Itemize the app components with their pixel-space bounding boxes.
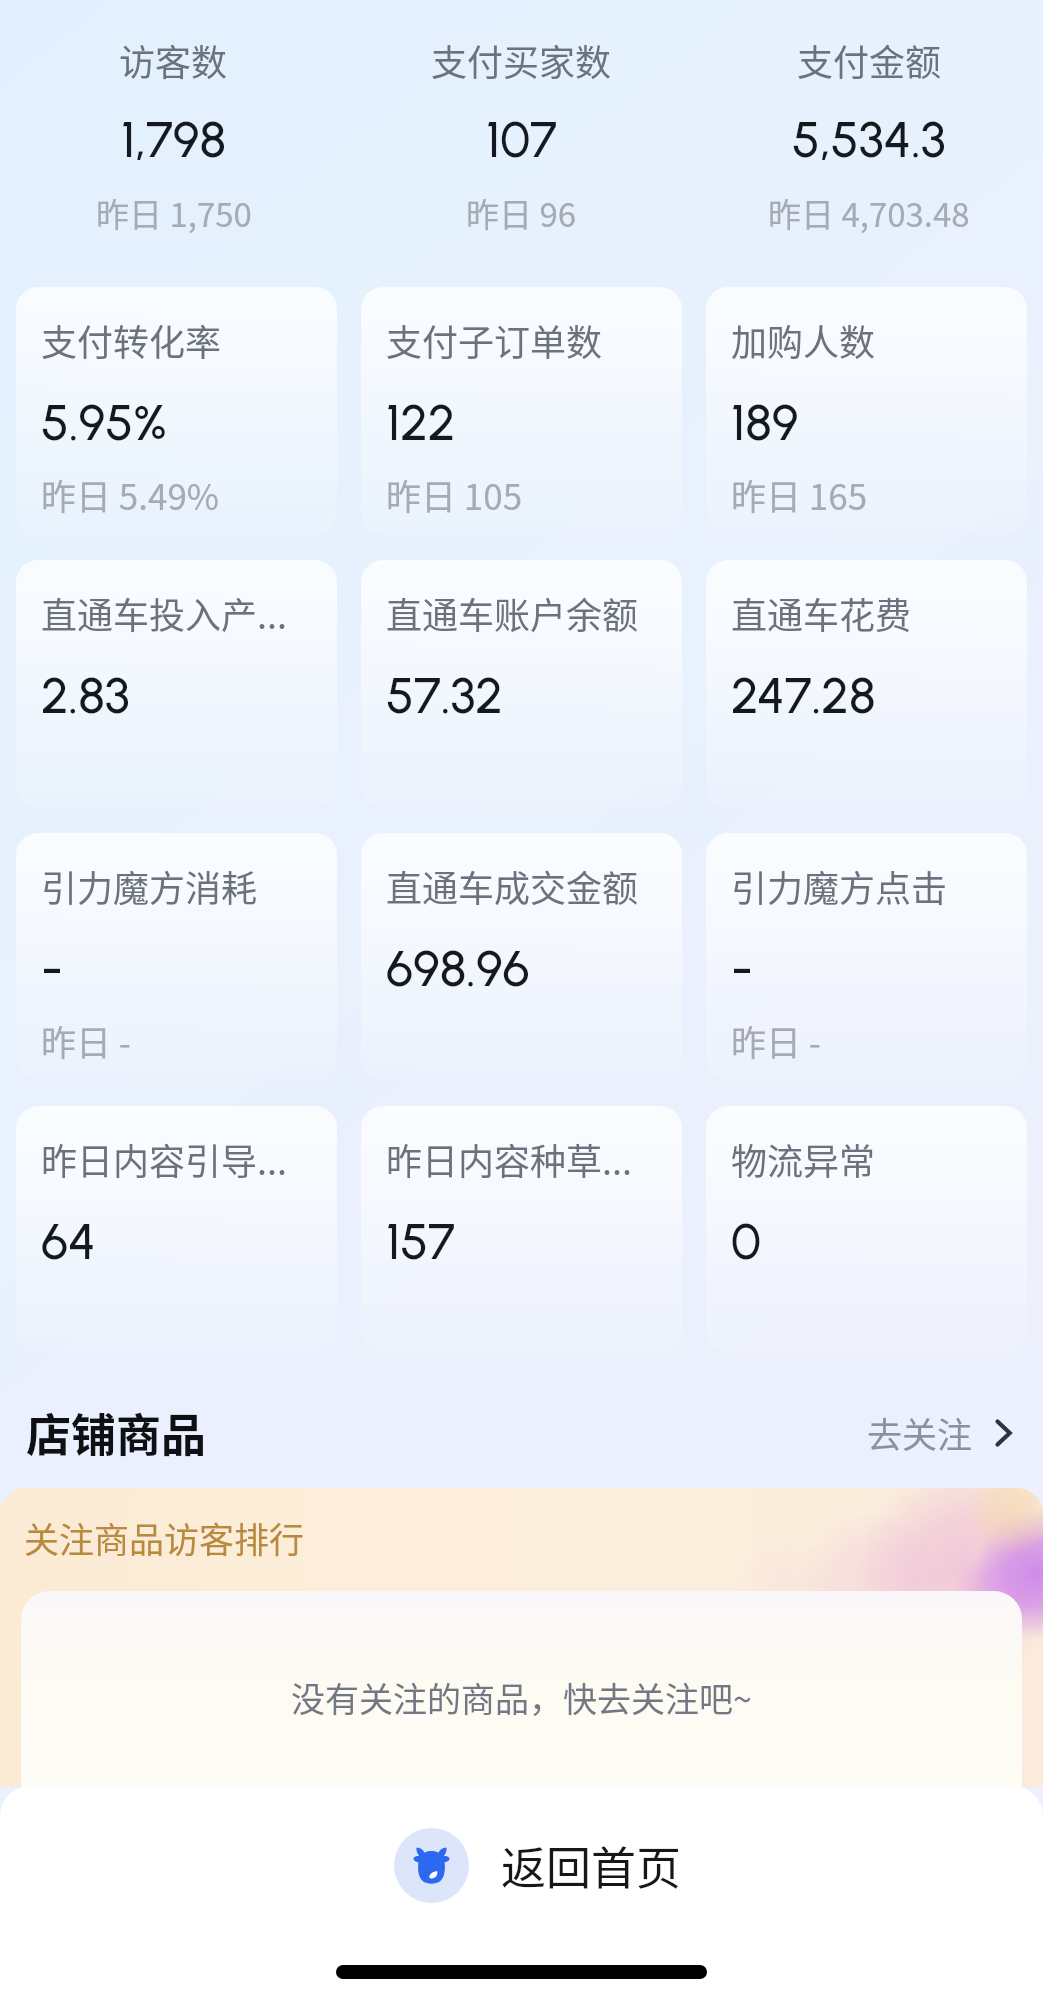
button[interactable]: 直通车投入产... (16, 560, 337, 807)
staticText: 没有关注的商品，快去关注吧~ (291, 1673, 752, 1722)
staticText: 直通车花费 (731, 587, 912, 639)
staticText: 昨日 4,703.48 (768, 189, 970, 237)
button[interactable]: 引力魔方消耗 (16, 833, 337, 1080)
staticText: 返回首页 (501, 1833, 682, 1898)
staticText: 5,534.3 (792, 109, 946, 169)
staticText: 昨日 96 (466, 189, 577, 237)
staticText: 昨日 1,750 (96, 189, 252, 237)
staticText: 店铺商品 (26, 1400, 207, 1465)
button[interactable]: 引力魔方点击 (706, 833, 1027, 1080)
staticText: 157 (386, 1211, 456, 1271)
staticText: 关注商品访客排行 (24, 1512, 305, 1563)
staticText: 昨日 5.49% (41, 469, 220, 520)
staticText: 107 (486, 109, 557, 169)
button[interactable]: Back to home (0, 1827, 1043, 1903)
staticText: 昨日 105 (386, 469, 523, 520)
staticText: 引力魔方点击 (731, 860, 948, 912)
staticText: 昨日 - (731, 1015, 821, 1066)
button[interactable]: 物流异常 (706, 1106, 1027, 1353)
staticText: 64 (41, 1211, 96, 1271)
other: Back to home (411, 1845, 452, 1886)
staticText: - (41, 938, 64, 998)
staticText: 昨日内容种草... (386, 1133, 633, 1185)
staticText: 698.96 (386, 938, 530, 998)
staticText: 1,798 (121, 109, 227, 169)
staticText: 昨日 165 (731, 469, 868, 520)
staticText: 支付金额 (797, 34, 942, 86)
staticText: 247.28 (731, 665, 876, 725)
button[interactable]: 支付子订单数 (361, 287, 682, 534)
button[interactable]: 访客数 (0, 34, 347, 237)
staticText: 0 (731, 1211, 761, 1271)
staticText: 122 (386, 392, 456, 452)
staticText: 直通车投入产... (41, 587, 288, 639)
staticText: 昨日 - (41, 1015, 131, 1066)
staticText: 2.83 (41, 665, 130, 725)
staticText: 189 (731, 392, 799, 452)
staticText: 物流异常 (731, 1133, 876, 1185)
button[interactable]: 支付买家数 (347, 34, 695, 237)
staticText: 57.32 (386, 665, 503, 725)
button[interactable]: 去关注 (867, 1407, 1013, 1458)
button[interactable]: 支付金额 (695, 34, 1043, 237)
button[interactable]: 直通车账户余额 (361, 560, 682, 807)
staticText: 加购人数 (731, 314, 876, 366)
staticText: 支付子订单数 (386, 314, 603, 366)
staticText: - (731, 938, 754, 998)
button[interactable]: 加购人数 (706, 287, 1027, 534)
staticText: 直通车账户余额 (386, 587, 639, 639)
staticText: 支付买家数 (431, 34, 612, 86)
staticText: 引力魔方消耗 (41, 860, 258, 912)
staticText: 支付转化率 (41, 314, 222, 366)
staticText: 访客数 (119, 34, 228, 86)
staticText: 5.95% (41, 392, 167, 452)
button[interactable]: 昨日内容种草... (361, 1106, 682, 1353)
button[interactable]: 直通车花费 (706, 560, 1027, 807)
staticText: 去关注 (867, 1407, 973, 1458)
button[interactable]: 昨日内容引导... (16, 1106, 337, 1353)
staticText: 昨日内容引导... (41, 1133, 288, 1185)
button[interactable]: 支付转化率 (16, 287, 337, 534)
staticText: 直通车成交金额 (386, 860, 639, 912)
button[interactable]: 直通车成交金额 (361, 833, 682, 1080)
